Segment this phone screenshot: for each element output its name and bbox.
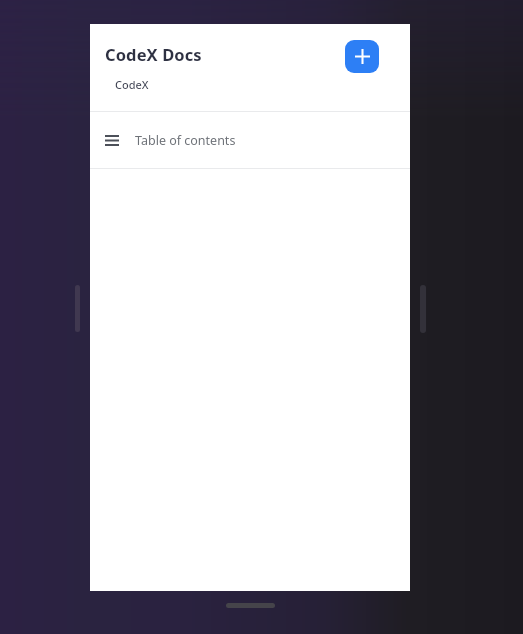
button[interactable]: Table of contents xyxy=(90,112,410,168)
button[interactable]: New document xyxy=(345,40,379,73)
staticText: Table of contents xyxy=(135,132,236,149)
button[interactable]: CodeX xyxy=(115,77,149,92)
staticText: CodeX Docs xyxy=(105,43,202,65)
